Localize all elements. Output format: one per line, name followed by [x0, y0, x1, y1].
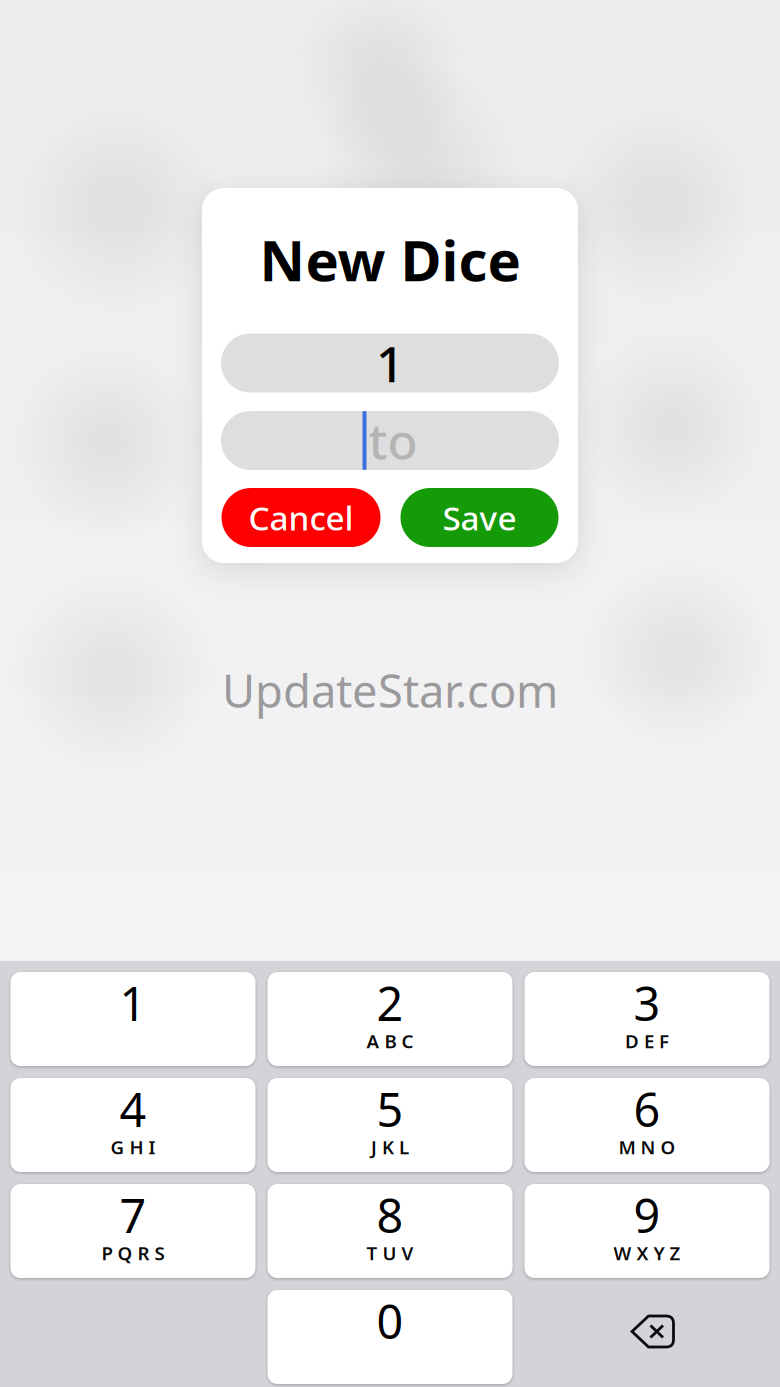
staticText: J K L	[371, 1135, 409, 1159]
button[interactable]: 2	[267, 972, 512, 1066]
staticText: P Q R S	[101, 1241, 164, 1265]
staticText: 9	[633, 1184, 660, 1246]
button[interactable]: 9	[524, 1184, 769, 1278]
staticText: D E F	[625, 1029, 669, 1053]
staticText: 1	[119, 972, 146, 1034]
button[interactable]: 6	[524, 1078, 769, 1172]
staticText: W X Y Z	[613, 1241, 680, 1265]
staticText: G H I	[110, 1135, 155, 1159]
staticText: 3	[633, 972, 660, 1034]
staticText: 5	[376, 1078, 403, 1140]
staticText: 0	[376, 1290, 403, 1352]
button[interactable]: 0	[267, 1290, 512, 1384]
staticText: New Dice	[259, 222, 520, 297]
staticText: T U V	[366, 1241, 413, 1265]
button[interactable]: 5	[267, 1078, 512, 1172]
staticText: A B C	[366, 1029, 413, 1053]
staticText: 4	[119, 1078, 146, 1140]
staticText: 6	[633, 1078, 660, 1140]
button[interactable]: 4	[10, 1078, 255, 1172]
staticText: 2	[376, 972, 403, 1034]
staticText: UpdateStar.com	[222, 660, 558, 720]
button[interactable]: 7	[10, 1184, 255, 1278]
staticText: 7	[119, 1184, 146, 1246]
staticText: Save	[442, 495, 516, 540]
staticText: Cancel	[248, 495, 353, 540]
button[interactable]: Delete	[524, 1290, 769, 1384]
button[interactable]: 1	[10, 972, 255, 1066]
button[interactable]: Cancel	[221, 488, 380, 547]
staticText: to	[368, 408, 417, 473]
button[interactable]: 8	[267, 1184, 512, 1278]
staticText: 1	[376, 330, 404, 396]
button[interactable]: 3	[524, 972, 769, 1066]
staticText: 8	[376, 1184, 403, 1246]
button[interactable]: Save	[400, 488, 558, 547]
staticText: M N O	[618, 1135, 675, 1159]
